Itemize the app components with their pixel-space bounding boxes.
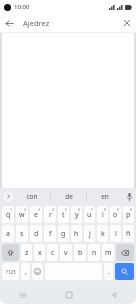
button[interactable]: Ajedrez xyxy=(18,14,118,32)
button[interactable]: en xyxy=(87,188,122,205)
staticText: 3 xyxy=(38,207,41,212)
button[interactable]: Emoji xyxy=(32,263,43,280)
staticText: a xyxy=(6,229,10,239)
button[interactable]: i xyxy=(97,206,108,223)
staticText: q xyxy=(6,210,11,220)
staticText: k xyxy=(101,229,105,239)
staticText: f xyxy=(49,229,52,239)
staticText: 8 xyxy=(104,207,107,212)
button[interactable]: y xyxy=(71,206,82,223)
button[interactable]: e xyxy=(30,206,42,223)
button[interactable]: Back xyxy=(0,14,18,32)
staticText: y xyxy=(75,210,79,220)
staticText: ñ xyxy=(126,229,131,239)
staticText: 5 xyxy=(65,207,68,212)
button[interactable]: n xyxy=(88,244,100,261)
button[interactable]: Period xyxy=(104,263,113,280)
button[interactable]: t xyxy=(58,206,69,223)
button[interactable]: g xyxy=(58,225,69,242)
button[interactable]: Backspace xyxy=(116,244,134,261)
staticText: w xyxy=(19,210,25,220)
button[interactable]: w xyxy=(16,206,28,223)
staticText: r xyxy=(49,210,52,220)
staticText: m xyxy=(105,248,112,258)
button[interactable]: p xyxy=(123,206,134,223)
button[interactable]: k xyxy=(97,225,108,242)
staticText: e xyxy=(34,210,38,220)
button[interactable]: z xyxy=(21,244,32,261)
button[interactable]: Recent apps xyxy=(0,286,46,304)
staticText: . xyxy=(108,267,110,277)
button[interactable]: o xyxy=(110,206,121,223)
staticText: ?123 xyxy=(6,269,16,275)
staticText: g xyxy=(61,229,66,239)
button[interactable]: b xyxy=(74,244,86,261)
staticText: de xyxy=(65,192,73,201)
button[interactable]: con xyxy=(14,188,50,205)
button[interactable]: a xyxy=(2,225,14,242)
staticText: d xyxy=(34,229,39,239)
button[interactable]: Comma xyxy=(21,263,30,280)
button[interactable]: s xyxy=(16,225,28,242)
staticText: c xyxy=(51,248,55,258)
button[interactable]: Voice input xyxy=(122,188,136,205)
staticText: x xyxy=(38,248,42,258)
staticText: 7 xyxy=(91,207,94,212)
staticText: 10:00 xyxy=(14,3,30,11)
staticText: 6 xyxy=(78,207,81,212)
staticText: o xyxy=(113,210,118,220)
button[interactable]: de xyxy=(51,188,86,205)
staticText: z xyxy=(25,248,29,258)
button[interactable]: h xyxy=(71,225,82,242)
staticText: l xyxy=(115,229,117,239)
staticText: con xyxy=(26,192,38,201)
staticText: s xyxy=(20,229,24,239)
staticText: p xyxy=(126,210,131,220)
button[interactable]: Expand toolbar xyxy=(3,191,14,202)
staticText: 4 xyxy=(52,207,55,212)
button[interactable]: f xyxy=(44,225,56,242)
staticText: n xyxy=(92,248,97,258)
staticText: 0 xyxy=(130,207,133,212)
button[interactable]: Clear search xyxy=(118,14,136,32)
button[interactable]: Search xyxy=(115,263,134,280)
staticText: h xyxy=(74,229,79,239)
button[interactable]: Shift xyxy=(2,244,19,261)
staticText: en xyxy=(101,192,109,201)
button[interactable]: q xyxy=(2,206,14,223)
button[interactable]: v xyxy=(60,244,72,261)
staticText: 1 xyxy=(10,207,13,212)
button[interactable]: x xyxy=(34,244,45,261)
staticText: i xyxy=(102,210,104,220)
staticText: 2 xyxy=(24,207,27,212)
button[interactable]: l xyxy=(110,225,121,242)
staticText: u xyxy=(87,210,92,220)
button[interactable]: Symbols xyxy=(2,263,19,280)
button[interactable]: m xyxy=(102,244,114,261)
staticText: , xyxy=(25,267,27,277)
button[interactable]: u xyxy=(84,206,95,223)
button[interactable]: d xyxy=(30,225,42,242)
button[interactable]: c xyxy=(47,244,58,261)
staticText: b xyxy=(78,248,83,258)
staticText: j xyxy=(89,229,91,239)
button[interactable]: r xyxy=(44,206,56,223)
staticText: Ajedrez xyxy=(23,18,50,28)
button[interactable]: ñ xyxy=(123,225,134,242)
staticText: 9 xyxy=(117,207,120,212)
button[interactable]: j xyxy=(84,225,95,242)
button[interactable]: Home xyxy=(46,286,91,304)
staticText: v xyxy=(64,248,68,258)
staticText: t xyxy=(62,210,65,220)
button[interactable]: Back xyxy=(91,286,136,304)
